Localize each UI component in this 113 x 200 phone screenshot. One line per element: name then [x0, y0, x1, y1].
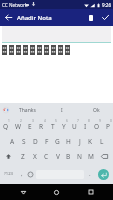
- staticText: 9: [99, 119, 101, 123]
- button[interactable]: D: [30, 133, 41, 149]
- staticText: Q: [3, 122, 9, 131]
- staticText: 1: [8, 119, 10, 123]
- button[interactable]: G: [52, 133, 63, 149]
- staticText: B: [66, 152, 71, 161]
- button[interactable]: U: [69, 117, 80, 133]
- button[interactable]: Emoji: [26, 164, 35, 184]
- staticText: A: [10, 137, 15, 146]
- staticText: ?123: [4, 171, 14, 177]
- staticText: R: [39, 122, 44, 131]
- staticText: C: [44, 152, 49, 161]
- button[interactable]: ,: [17, 164, 26, 184]
- staticText: O: [94, 122, 100, 131]
- button[interactable]: A: [6, 133, 18, 149]
- staticText: X: [33, 152, 37, 161]
- button[interactable]: Save note: [98, 10, 113, 25]
- button[interactable]: K: [85, 133, 96, 149]
- button[interactable]: O: [91, 117, 102, 133]
- staticText: T: [51, 122, 55, 131]
- button[interactable]: Q: [0, 117, 12, 133]
- button[interactable]: .: [85, 164, 94, 184]
- staticText: 0: [110, 119, 112, 123]
- button[interactable]: I: [80, 117, 91, 133]
- staticText: W: [15, 122, 22, 131]
- staticText: Thanks: [19, 107, 36, 114]
- staticText: M: [88, 152, 94, 161]
- button[interactable]: T: [47, 117, 58, 133]
- staticText: Añadir Nota: [17, 14, 52, 22]
- staticText: 8: [88, 119, 90, 123]
- staticText: 5: [55, 119, 57, 123]
- staticText: I: [84, 122, 87, 131]
- button[interactable]: W: [12, 117, 24, 133]
- button[interactable]: Home: [48, 184, 65, 200]
- staticText: 9:26: [102, 2, 112, 8]
- button[interactable]: Backspace: [96, 149, 113, 164]
- staticText: I: [61, 107, 63, 114]
- button[interactable]: Y: [58, 117, 69, 133]
- staticText: L: [100, 137, 104, 146]
- button[interactable]: Recent apps: [82, 184, 99, 200]
- button[interactable]: Back: [15, 184, 32, 200]
- button[interactable]: Enter: [98, 169, 109, 180]
- staticText: CC Network: [2, 2, 28, 8]
- staticText: ,: [21, 170, 23, 178]
- staticText: G: [55, 137, 60, 146]
- staticText: P: [106, 122, 110, 131]
- staticText: K: [88, 137, 93, 146]
- button[interactable]: N: [74, 149, 85, 164]
- staticText: 7: [77, 119, 79, 123]
- button[interactable]: R: [36, 117, 47, 133]
- staticText: Ok: [93, 107, 100, 114]
- button[interactable]: Shift: [0, 149, 17, 164]
- staticText: H: [66, 137, 71, 146]
- button[interactable]: Z: [17, 149, 29, 164]
- button[interactable]: B: [63, 149, 74, 164]
- staticText: U: [72, 122, 77, 131]
- button[interactable]: I: [45, 103, 79, 117]
- button[interactable]: Back: [0, 9, 17, 26]
- staticText: 4: [44, 119, 46, 123]
- button[interactable]: Thanks: [10, 103, 45, 117]
- staticText: Z: [21, 152, 25, 161]
- staticText: J: [79, 137, 81, 146]
- button[interactable]: C: [41, 149, 52, 164]
- button[interactable]: S: [18, 133, 30, 149]
- button[interactable]: M: [85, 149, 96, 164]
- staticText: E: [28, 122, 32, 131]
- staticText: D: [33, 137, 38, 146]
- staticText: N: [77, 152, 82, 161]
- staticText: S: [22, 137, 26, 146]
- staticText: V: [56, 152, 60, 161]
- button[interactable]: E: [24, 117, 36, 133]
- staticText: 2: [20, 119, 22, 123]
- staticText: 6: [66, 119, 68, 123]
- staticText: .: [89, 170, 91, 178]
- button[interactable]: H: [63, 133, 74, 149]
- button[interactable]: Ok: [79, 103, 113, 117]
- button[interactable]: ?123: [0, 164, 17, 184]
- staticText: Y: [62, 122, 66, 131]
- button[interactable]: Delete note: [83, 10, 98, 25]
- button[interactable]: P: [102, 117, 113, 133]
- button[interactable]: V: [52, 149, 63, 164]
- button[interactable]: L: [96, 133, 107, 149]
- staticText: F: [45, 137, 49, 146]
- button[interactable]: X: [29, 149, 41, 164]
- button[interactable]: F: [41, 133, 52, 149]
- button[interactable]: J: [74, 133, 85, 149]
- staticText: 3: [32, 119, 34, 123]
